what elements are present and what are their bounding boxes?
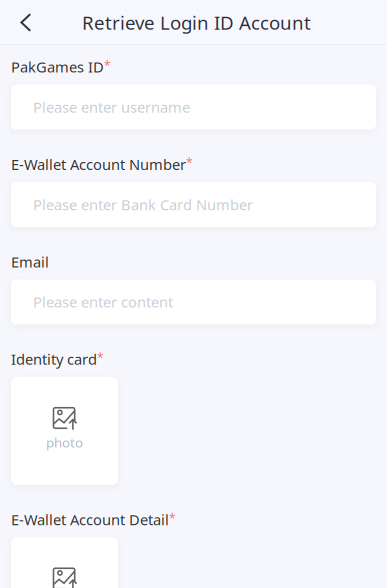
staticText: PakGames ID bbox=[11, 57, 104, 76]
button[interactable]: Please enter content bbox=[11, 279, 376, 324]
button[interactable]: Back bbox=[0, 0, 46, 45]
staticText: Please enter username bbox=[33, 97, 190, 117]
staticText: Email bbox=[11, 252, 49, 271]
staticText: Identity card bbox=[11, 349, 97, 369]
staticText: Please enter content bbox=[33, 292, 173, 312]
staticText: Please enter Bank Card Number bbox=[33, 195, 253, 214]
button[interactable]: Please enter Bank Card Number bbox=[11, 182, 376, 227]
staticText: photo bbox=[46, 434, 83, 451]
button[interactable]: Upload photo bbox=[11, 377, 118, 485]
staticText: E-Wallet Account Number bbox=[11, 154, 186, 174]
staticText: * bbox=[169, 510, 176, 526]
button[interactable]: Upload photo bbox=[11, 537, 118, 588]
staticText: * bbox=[97, 350, 104, 366]
staticText: E-Wallet Account Detail bbox=[11, 510, 169, 529]
staticText: * bbox=[104, 57, 111, 73]
staticText: * bbox=[186, 155, 193, 171]
button[interactable]: Please enter username bbox=[11, 84, 376, 129]
staticText: Retrieve Login ID Account bbox=[82, 10, 311, 35]
